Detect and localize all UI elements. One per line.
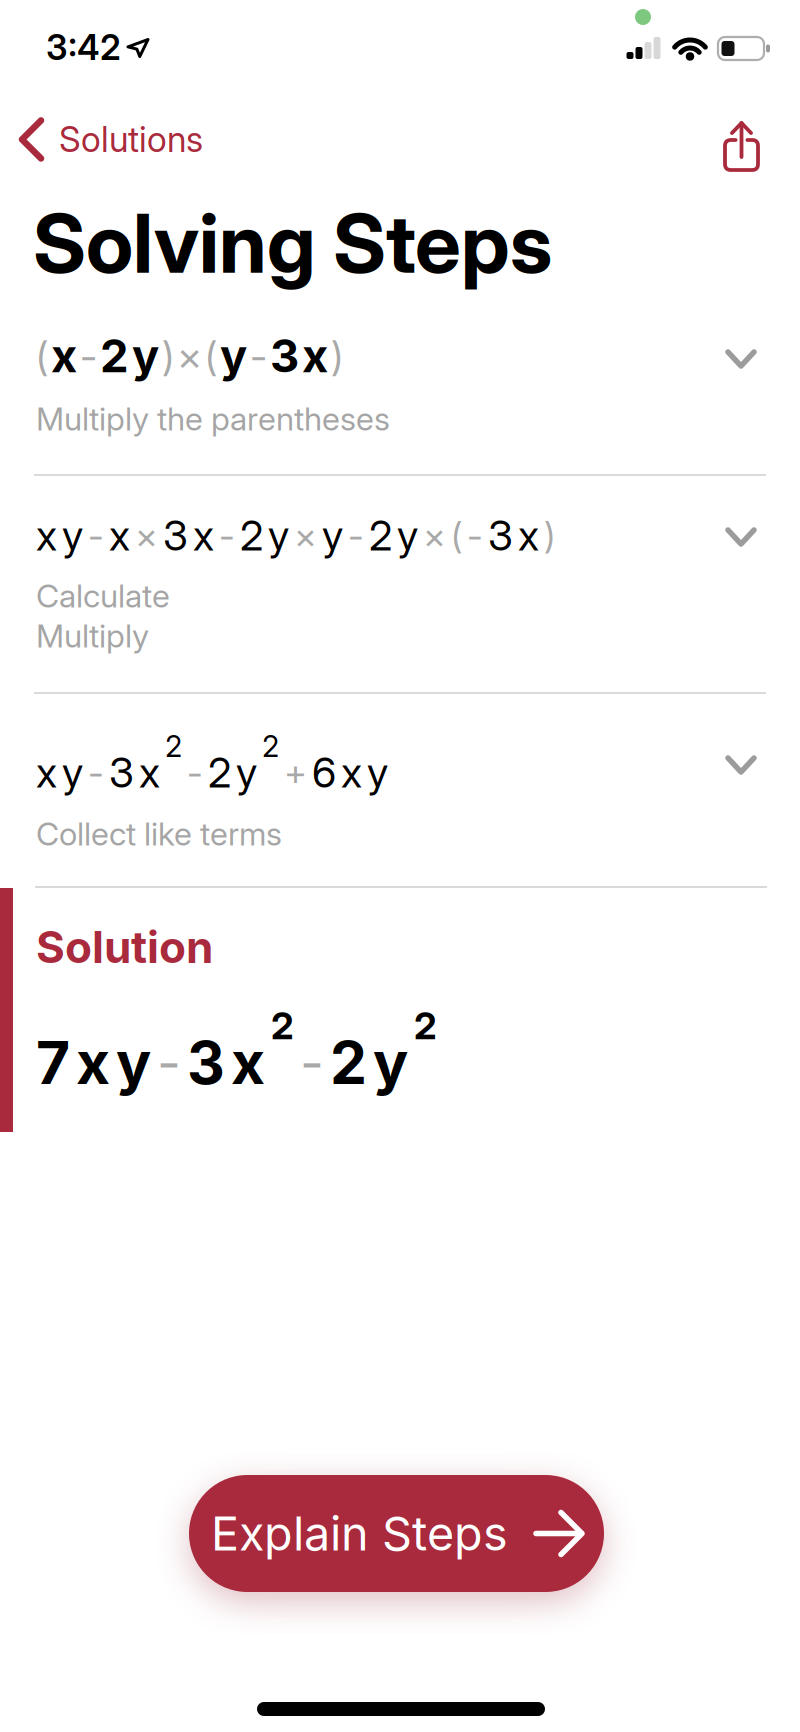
staticText: 2 bbox=[100, 329, 129, 382]
staticText: x bbox=[76, 1028, 110, 1097]
staticText: 2 bbox=[414, 1004, 437, 1048]
staticText: - bbox=[157, 1032, 181, 1093]
button[interactable]: ( bbox=[0, 300, 800, 474]
staticText: x bbox=[36, 511, 57, 560]
button[interactable]: Explain Steps bbox=[189, 1475, 604, 1592]
staticText: y bbox=[62, 748, 83, 797]
button[interactable]: x bbox=[0, 693, 800, 887]
staticText: × bbox=[177, 332, 202, 379]
staticText: x bbox=[193, 511, 214, 560]
staticText: x bbox=[51, 329, 77, 382]
staticText: ( bbox=[451, 514, 462, 557]
staticText: Collect like terms bbox=[36, 815, 282, 853]
staticText: + bbox=[284, 751, 307, 794]
staticText: 2 bbox=[369, 511, 392, 560]
staticText: y bbox=[236, 748, 257, 797]
staticText: y bbox=[62, 511, 83, 560]
staticText: x bbox=[109, 511, 130, 560]
staticText: 2 bbox=[271, 1004, 294, 1048]
staticText: - bbox=[300, 1032, 324, 1093]
staticText: 3:42 bbox=[46, 27, 121, 68]
staticText: - bbox=[187, 751, 203, 794]
staticText: ( bbox=[205, 332, 217, 379]
button[interactable]: Back bbox=[22, 119, 203, 160]
staticText: ) bbox=[162, 332, 174, 379]
staticText: 2 bbox=[330, 1028, 367, 1097]
staticText: ) bbox=[331, 332, 343, 379]
staticText: y bbox=[322, 511, 343, 560]
staticText: y bbox=[116, 1028, 151, 1097]
staticText: x bbox=[341, 748, 362, 797]
staticText: × bbox=[135, 514, 158, 557]
staticText: y bbox=[367, 748, 388, 797]
staticText: Calculate bbox=[36, 577, 170, 615]
staticText: y bbox=[397, 511, 418, 560]
staticText: y bbox=[220, 329, 247, 382]
staticText: Solving Steps bbox=[33, 194, 552, 292]
staticText: - bbox=[88, 514, 104, 557]
staticText: × bbox=[294, 514, 317, 557]
staticText: 3 bbox=[109, 748, 134, 797]
staticText: 2 bbox=[208, 748, 231, 797]
staticText: - bbox=[80, 332, 97, 379]
staticText: ) bbox=[544, 514, 555, 557]
staticText: 2 bbox=[240, 511, 263, 560]
staticText: - bbox=[219, 514, 235, 557]
staticText: 2 bbox=[165, 729, 182, 764]
staticText: ( bbox=[36, 332, 48, 379]
staticText: x bbox=[518, 511, 539, 560]
staticText: 7 bbox=[36, 1028, 70, 1097]
staticText: - bbox=[348, 514, 364, 557]
staticText: Solution bbox=[36, 921, 213, 973]
staticText: x bbox=[231, 1028, 265, 1097]
button[interactable]: x bbox=[0, 475, 800, 693]
staticText: - bbox=[250, 332, 267, 379]
button[interactable]: Share bbox=[722, 113, 758, 165]
staticText: 6 bbox=[312, 748, 336, 797]
staticText: - bbox=[88, 751, 104, 794]
staticText: 3 bbox=[163, 511, 188, 560]
staticText: y bbox=[373, 1028, 408, 1097]
staticText: × bbox=[423, 514, 446, 557]
staticText: y bbox=[132, 329, 159, 382]
staticText: - bbox=[467, 514, 483, 557]
staticText: Solutions bbox=[59, 119, 203, 160]
staticText: Explain Steps bbox=[211, 1506, 508, 1561]
staticText: y bbox=[268, 511, 289, 560]
staticText: 3 bbox=[488, 511, 513, 560]
staticText: Multiply the parentheses bbox=[36, 400, 390, 438]
staticText: 3 bbox=[270, 329, 299, 382]
staticText: x bbox=[302, 329, 328, 382]
staticText: 3 bbox=[187, 1028, 225, 1097]
staticText: 2 bbox=[262, 729, 279, 764]
staticText: x bbox=[36, 748, 57, 797]
staticText: x bbox=[139, 748, 160, 797]
staticText: Multiply bbox=[36, 617, 149, 655]
